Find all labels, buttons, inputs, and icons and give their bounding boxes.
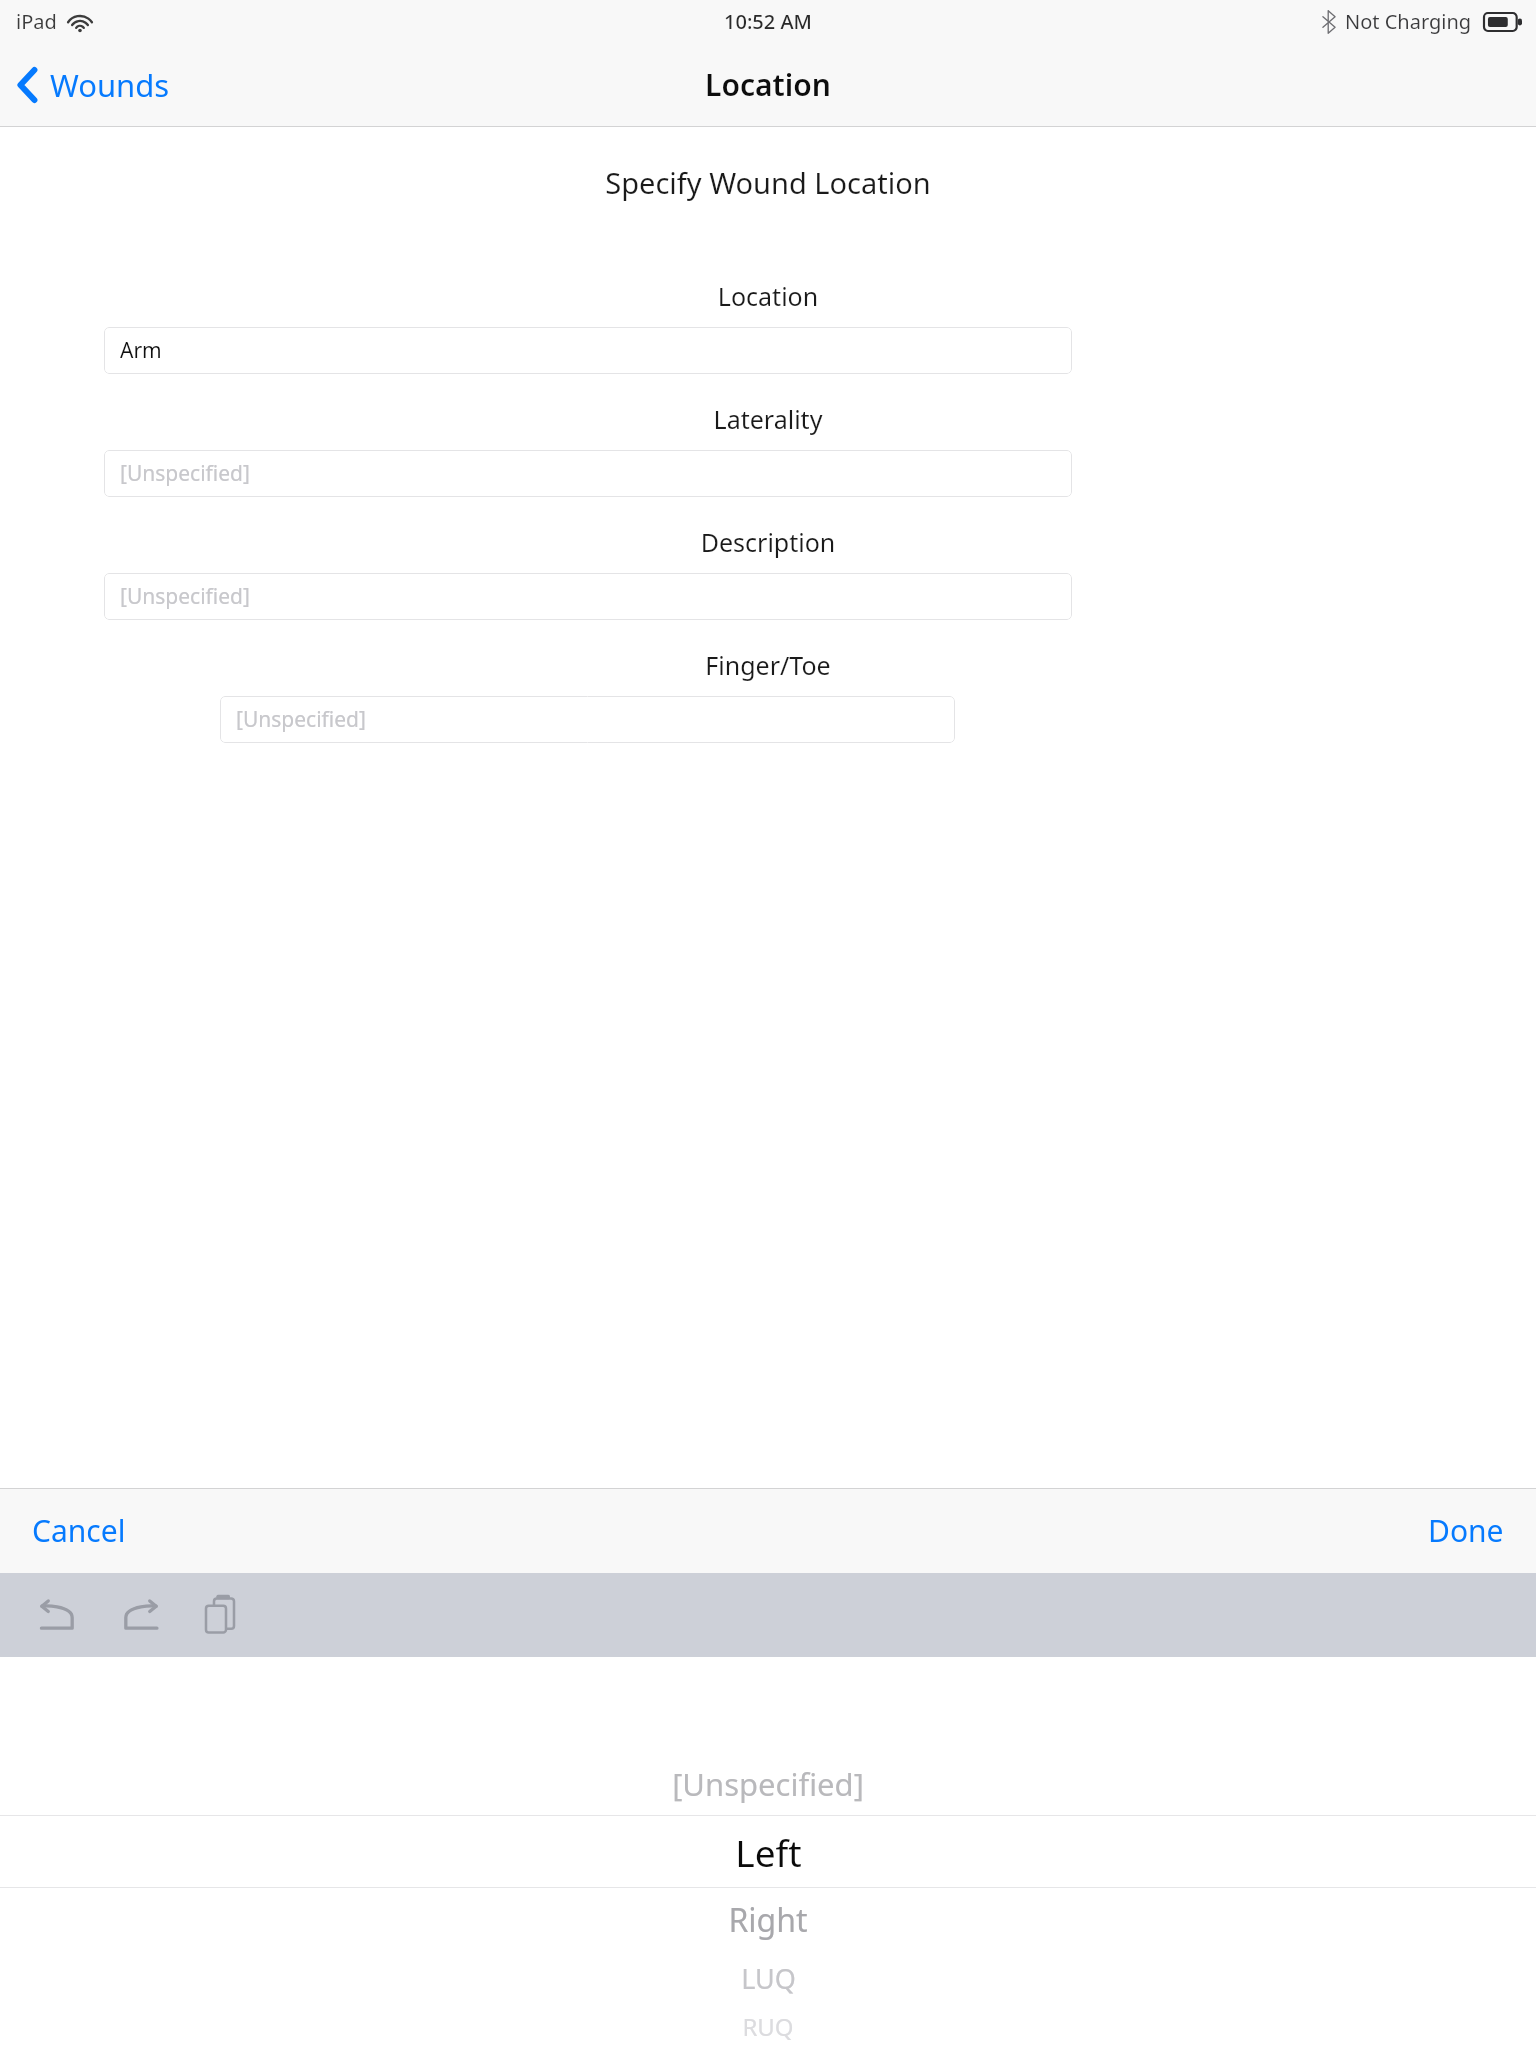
staticText: Arm	[120, 336, 162, 365]
staticText: RUQ	[742, 2010, 794, 2043]
button[interactable]: Undo	[26, 1585, 88, 1645]
staticText: Laterality	[0, 402, 1536, 436]
staticText: Finger/Toe	[0, 648, 1536, 682]
staticText: Cancel	[32, 1510, 126, 1551]
staticText: Not Charging	[1345, 8, 1472, 35]
staticText: Specify Wound Location	[0, 163, 1536, 202]
button[interactable]: [Unspecified]	[220, 696, 955, 743]
staticText: [Unspecified]	[672, 1763, 864, 1805]
button[interactable]: [Unspecified]	[0, 1753, 1536, 1815]
staticText: [Unspecified]	[120, 459, 250, 488]
staticText: Wounds	[50, 64, 170, 106]
staticText: Description	[0, 525, 1536, 559]
staticText: LUQ	[741, 1960, 796, 1997]
button[interactable]: LUQ	[0, 1952, 1536, 2004]
button[interactable]: Paste	[194, 1584, 250, 1646]
staticText: Left	[735, 1827, 802, 1877]
button[interactable]: Left	[0, 1816, 1536, 1887]
button[interactable]: Arm	[104, 327, 1072, 374]
button[interactable]: [Unspecified]	[104, 450, 1072, 497]
button[interactable]: Right	[0, 1888, 1536, 1952]
staticText: Location	[0, 279, 1536, 313]
button[interactable]: Wounds	[18, 64, 170, 106]
staticText: Right	[728, 1898, 808, 1942]
staticText: 10:52 AM	[724, 8, 812, 35]
button[interactable]: Cancel	[12, 1498, 146, 1563]
staticText: iPad	[16, 8, 57, 35]
button[interactable]: [Unspecified]	[104, 573, 1072, 620]
staticText: Location	[705, 64, 831, 105]
button[interactable]: Redo	[110, 1585, 172, 1645]
staticText: [Unspecified]	[120, 582, 250, 611]
button[interactable]: Done	[1408, 1498, 1524, 1563]
staticText: [Unspecified]	[236, 705, 366, 734]
staticText: Done	[1428, 1510, 1504, 1551]
